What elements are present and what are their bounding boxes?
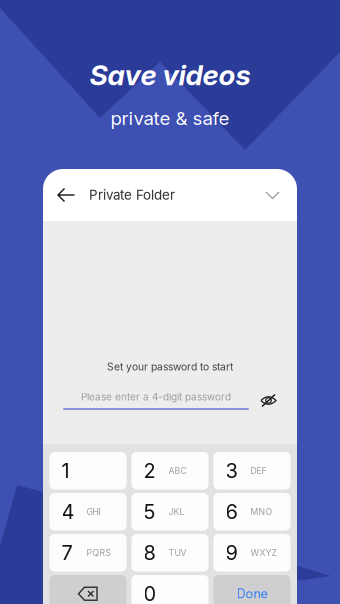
- staticText: PQRS: [86, 547, 111, 558]
- button[interactable]: 9: [213, 534, 290, 571]
- staticText: Done: [236, 586, 267, 601]
- button[interactable]: Done: [213, 575, 290, 604]
- staticText: GHI: [86, 506, 100, 517]
- button[interactable]: 6: [213, 493, 290, 530]
- staticText: 4: [61, 500, 74, 524]
- staticText: Save videos: [89, 58, 250, 92]
- button[interactable]: 7: [49, 534, 126, 571]
- button[interactable]: 4: [49, 493, 126, 530]
- staticText: 3: [225, 459, 237, 483]
- staticText: 6: [225, 500, 237, 524]
- staticText: DEF: [250, 465, 266, 476]
- button[interactable]: Collapse: [265, 187, 280, 203]
- staticText: 2: [143, 459, 155, 483]
- staticText: 9: [225, 541, 237, 565]
- button[interactable]: Back: [57, 186, 75, 204]
- button[interactable]: Delete: [49, 575, 126, 604]
- staticText: 7: [61, 541, 72, 565]
- staticText: Set your password to start: [107, 360, 233, 373]
- button[interactable]: 0: [131, 575, 208, 604]
- staticText: Please enter a 4-digit password: [81, 391, 231, 403]
- button[interactable]: 2: [131, 452, 208, 489]
- staticText: Private Folder: [89, 187, 175, 203]
- staticText: ABC: [168, 465, 186, 476]
- button[interactable]: 5: [131, 493, 208, 530]
- staticText: 8: [143, 541, 155, 565]
- staticText: WXYZ: [250, 547, 276, 558]
- staticText: 5: [143, 500, 155, 524]
- button[interactable]: 1: [49, 452, 126, 489]
- staticText: TUV: [168, 547, 186, 558]
- staticText: JKL: [168, 506, 184, 517]
- button[interactable]: 3: [213, 452, 290, 489]
- staticText: MNO: [250, 506, 272, 517]
- staticText: private & safe: [110, 107, 229, 129]
- staticText: 1: [61, 459, 69, 483]
- button[interactable]: 8: [131, 534, 208, 571]
- staticText: 0: [143, 582, 156, 604]
